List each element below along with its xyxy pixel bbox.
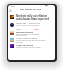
- button[interactable]: [9, 31, 55, 37]
- staticText: Night sky guide: [16, 44, 34, 47]
- staticText: Five recipes to try this week: [16, 33, 40, 35]
- staticText: Meteor shower peaks tonight: [16, 46, 41, 48]
- staticText: Storm warning issued for the week: [16, 39, 46, 41]
- staticText: ⋮: [49, 15, 51, 17]
- staticText: ▮▮▮: [45, 5, 48, 7]
- staticText: Kitchen trends: [16, 31, 33, 34]
- staticText: Weather: [16, 41, 23, 43]
- staticText: Food & Home: [16, 34, 27, 36]
- button[interactable]: [9, 15, 55, 22]
- button[interactable]: [9, 43, 55, 49]
- staticText: Have a look at this roundup: [16, 24, 40, 26]
- button[interactable]: Top stories for you: [8, 5, 30, 8]
- staticText: Financial Times · 2h ago: [16, 18, 37, 20]
- staticText: Sarah Chen · shared a link: [16, 22, 40, 25]
- staticText: LIVE: [34, 28, 39, 31]
- staticText: Top stories for you: [20, 8, 42, 11]
- staticText: Today: [16, 28, 21, 30]
- button[interactable]: Menu: [9, 9, 12, 12]
- staticText: Coastal towns prepare: [16, 37, 38, 40]
- staticText: ⋮: [49, 44, 51, 46]
- staticText: Markets rally as inflation cools faster …: [16, 14, 50, 20]
- button[interactable]: [9, 37, 55, 43]
- staticText: 9:41: [11, 5, 15, 7]
- staticText: ⋮: [49, 31, 51, 33]
- button[interactable]: [9, 22, 55, 28]
- staticText: ⋮: [49, 38, 51, 40]
